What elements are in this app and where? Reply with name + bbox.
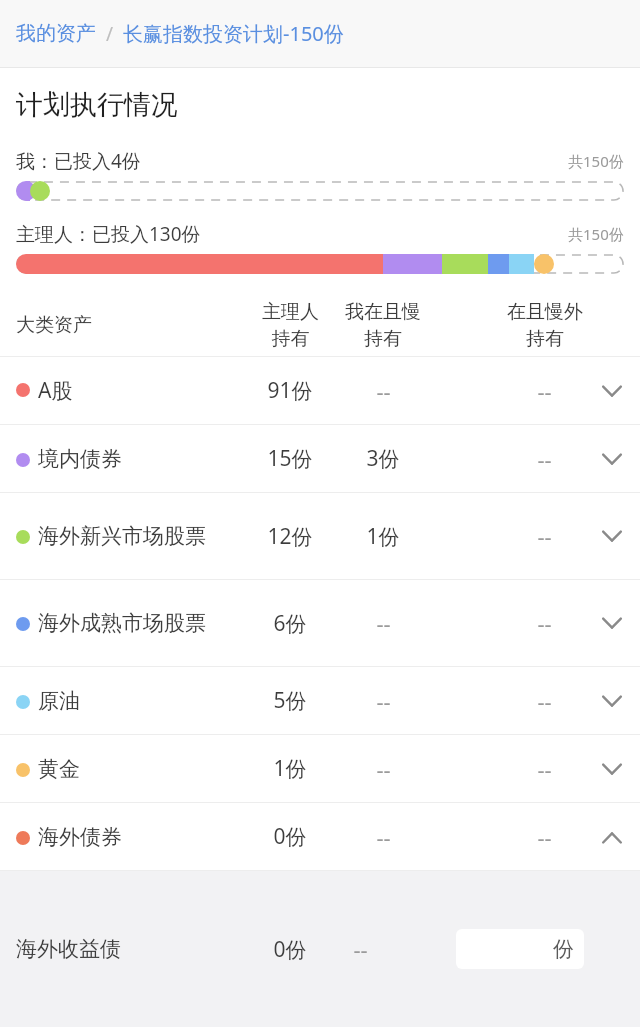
button[interactable]: 海外成熟市场股票 — [0, 580, 640, 666]
button[interactable]: 份 — [456, 929, 584, 969]
staticText: -- — [537, 608, 552, 638]
staticText: 6份 — [273, 609, 307, 638]
staticText: 大类资产 — [16, 313, 92, 337]
button[interactable]: 我的资产 — [16, 21, 96, 46]
staticText: -- — [537, 444, 552, 474]
staticText: 12份 — [267, 522, 313, 551]
staticText: 海外成熟市场股票 — [38, 610, 206, 636]
staticText: 海外债券 — [38, 824, 122, 850]
button[interactable]: 展开 — [592, 603, 632, 643]
button[interactable]: 展开 — [592, 749, 632, 789]
staticText: / — [96, 21, 123, 47]
button[interactable]: 海外债券 — [0, 803, 640, 870]
staticText: 5份 — [273, 686, 307, 715]
staticText: -- — [537, 376, 552, 406]
staticText: 黄金 — [38, 756, 80, 782]
staticText: -- — [537, 686, 552, 716]
staticText: 0份 — [273, 935, 307, 964]
staticText: -- — [537, 822, 552, 852]
staticText: 1份 — [273, 754, 307, 783]
staticText: -- — [376, 822, 391, 852]
button[interactable]: 展开 — [592, 516, 632, 556]
staticText: 0份 — [273, 822, 307, 851]
staticText: -- — [376, 608, 391, 638]
button[interactable]: 展开 — [592, 371, 632, 411]
staticText: -- — [376, 376, 391, 406]
button[interactable]: 展开 — [592, 439, 632, 479]
button[interactable]: 境内债券 — [0, 425, 640, 492]
staticText: -- — [376, 686, 391, 716]
staticText: -- — [537, 754, 552, 784]
staticText: 海外新兴市场股票 — [38, 523, 206, 549]
button[interactable]: 黄金 — [0, 735, 640, 802]
staticText: 3份 — [366, 444, 400, 473]
staticText: 共150份 — [568, 224, 624, 244]
staticText: -- — [537, 521, 552, 551]
staticText: 主理人 持有 — [262, 300, 319, 351]
staticText: 我的资产 — [16, 21, 96, 46]
staticText: 我：已投入4份 — [16, 148, 141, 174]
button[interactable]: 展开 — [592, 681, 632, 721]
button[interactable]: 原油 — [0, 667, 640, 734]
staticText: -- — [376, 754, 391, 784]
staticText: 份 — [553, 936, 574, 962]
staticText: 1份 — [366, 522, 400, 551]
staticText: 境内债券 — [38, 446, 122, 472]
button[interactable]: 海外新兴市场股票 — [0, 493, 640, 579]
button[interactable]: 收起 — [592, 817, 632, 857]
staticText: -- — [353, 934, 368, 964]
staticText: 海外收益债 — [16, 936, 121, 962]
staticText: 计划执行情况 — [16, 88, 178, 122]
staticText: 15份 — [267, 444, 313, 473]
staticText: 长赢指数投资计划-150份 — [123, 20, 344, 47]
button[interactable]: A股 — [0, 357, 640, 424]
staticText: 原油 — [38, 688, 80, 714]
button[interactable]: 长赢指数投资计划-150份 — [123, 20, 344, 47]
staticText: 我在且慢 持有 — [345, 300, 421, 351]
staticText: 91份 — [267, 376, 313, 405]
staticText: 主理人：已投入130份 — [16, 221, 201, 247]
staticText: 共150份 — [568, 151, 624, 171]
staticText: 在且慢外 持有 — [507, 300, 583, 351]
staticText: A股 — [38, 376, 73, 405]
